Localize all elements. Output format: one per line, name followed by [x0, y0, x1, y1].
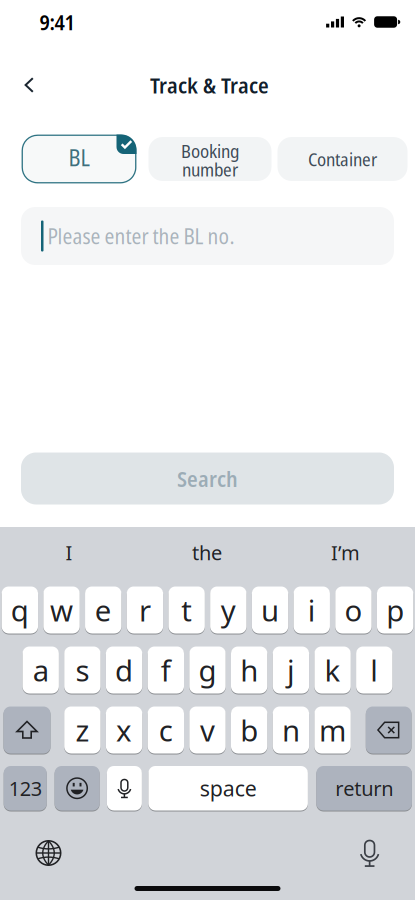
staticText: Booking: [181, 138, 239, 163]
staticText: y: [221, 590, 236, 629]
button[interactable]: d: [106, 646, 142, 694]
staticText: t: [181, 590, 192, 629]
button[interactable]: k: [314, 646, 351, 694]
button[interactable]: return: [316, 765, 412, 811]
button[interactable]: h: [231, 646, 267, 694]
staticText: v: [200, 710, 215, 749]
staticText: r: [139, 590, 151, 629]
button[interactable]: the: [138, 531, 276, 574]
staticText: the: [192, 539, 222, 566]
staticText: I’m: [331, 539, 360, 566]
staticText: n: [282, 710, 300, 749]
button[interactable]: r: [127, 586, 163, 634]
staticText: w: [50, 590, 73, 629]
staticText: q: [11, 590, 29, 629]
button[interactable]: space: [148, 765, 308, 811]
staticText: u: [261, 590, 279, 629]
button[interactable]: Please enter the BL no.: [21, 207, 394, 265]
button[interactable]: Emoji: [55, 765, 100, 811]
button[interactable]: c: [148, 706, 184, 754]
button[interactable]: n: [273, 706, 309, 754]
button[interactable]: Shift: [3, 706, 50, 754]
staticText: x: [116, 710, 132, 749]
staticText: Please enter the BL no.: [47, 221, 234, 251]
staticText: j: [287, 650, 295, 689]
staticText: c: [159, 710, 173, 749]
button[interactable]: Booking: [148, 137, 271, 181]
button[interactable]: I: [0, 531, 138, 574]
staticText: I: [65, 539, 72, 566]
button[interactable]: 123: [4, 765, 47, 811]
button[interactable]: f: [148, 646, 184, 694]
staticText: i: [308, 590, 316, 629]
button[interactable]: y: [210, 586, 247, 634]
button[interactable]: a: [22, 646, 59, 694]
staticText: 123: [9, 775, 42, 802]
staticText: Container: [308, 146, 377, 172]
staticText: h: [240, 650, 258, 689]
button[interactable]: b: [231, 706, 267, 754]
staticText: e: [95, 590, 112, 629]
staticText: m: [319, 710, 346, 749]
staticText: number: [182, 156, 238, 182]
staticText: BL: [68, 142, 89, 173]
button[interactable]: i: [294, 586, 330, 634]
button[interactable]: Back: [0, 67, 35, 103]
button[interactable]: Dictation: [107, 765, 142, 811]
staticText: s: [75, 650, 89, 689]
staticText: g: [198, 650, 216, 689]
staticText: l: [370, 650, 378, 689]
button[interactable]: q: [2, 586, 38, 634]
button[interactable]: v: [189, 706, 226, 754]
staticText: return: [335, 775, 393, 802]
button[interactable]: x: [106, 706, 142, 754]
button[interactable]: s: [64, 646, 101, 694]
button[interactable]: w: [43, 586, 80, 634]
button[interactable]: u: [252, 586, 288, 634]
staticText: b: [240, 710, 258, 749]
staticText: z: [75, 710, 89, 749]
button[interactable]: Next keyboard: [0, 840, 61, 866]
staticText: o: [344, 590, 362, 629]
staticText: space: [200, 774, 257, 802]
button[interactable]: e: [85, 586, 121, 634]
staticText: Search: [177, 463, 238, 493]
staticText: 9:41: [39, 7, 74, 37]
button[interactable]: g: [189, 646, 226, 694]
staticText: f: [161, 650, 171, 689]
button[interactable]: Container: [277, 137, 407, 181]
button[interactable]: m: [314, 706, 351, 754]
button[interactable]: o: [335, 586, 372, 634]
button[interactable]: Delete: [366, 706, 411, 754]
button[interactable]: p: [377, 586, 413, 634]
staticText: a: [33, 650, 49, 689]
button[interactable]: BL: [21, 134, 136, 183]
button[interactable]: l: [356, 646, 392, 694]
staticText: k: [325, 650, 341, 689]
staticText: Track & Trace: [150, 70, 269, 100]
staticText: d: [115, 650, 133, 689]
staticText: p: [386, 590, 404, 629]
button[interactable]: j: [273, 646, 309, 694]
button[interactable]: z: [64, 706, 101, 754]
button[interactable]: Search: [21, 452, 394, 504]
button[interactable]: t: [168, 586, 205, 634]
button[interactable]: I’m: [276, 531, 415, 574]
button[interactable]: Dictation: [358, 839, 415, 867]
